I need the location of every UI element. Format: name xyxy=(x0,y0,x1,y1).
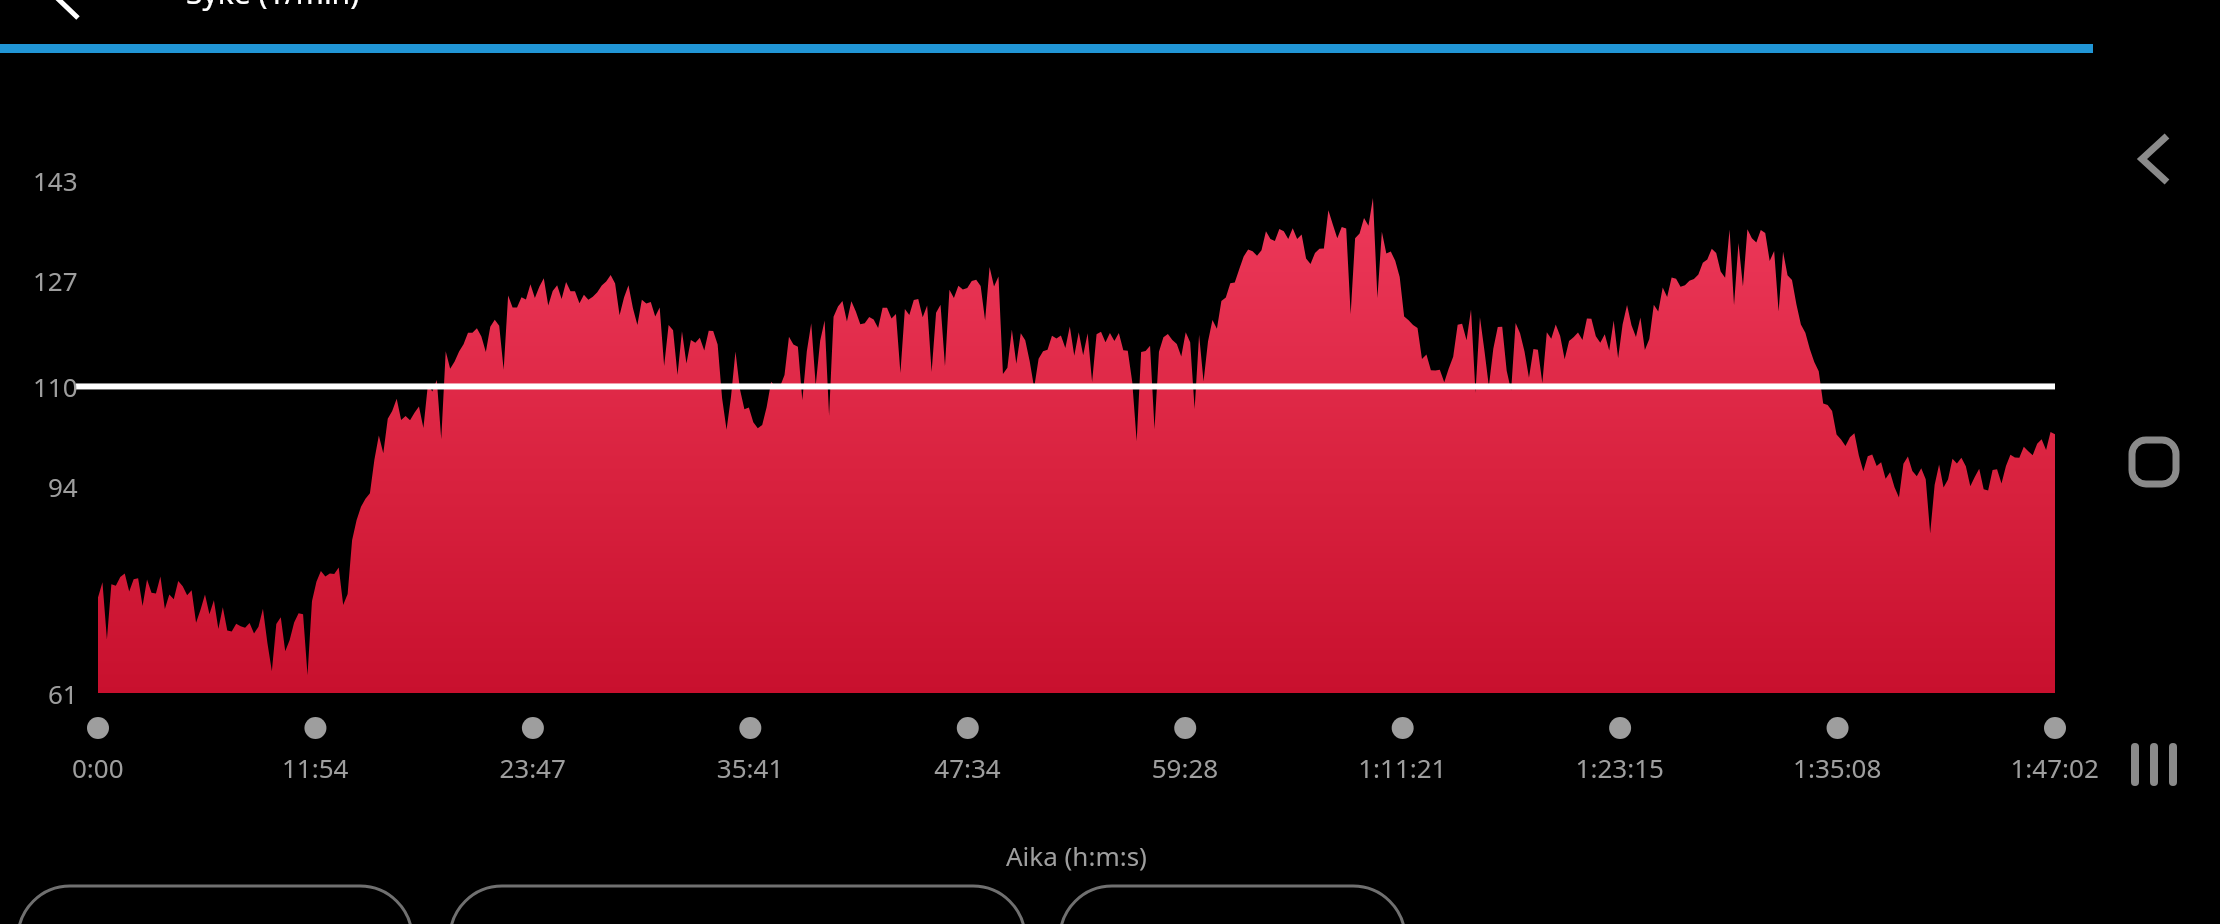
button[interactable]: Back xyxy=(8,0,72,24)
button[interactable] xyxy=(450,886,1025,924)
button[interactable]: Home xyxy=(2125,430,2185,494)
button[interactable] xyxy=(1060,886,1405,924)
button[interactable]: Back xyxy=(2125,125,2185,195)
button[interactable]: Recent apps xyxy=(2125,735,2185,795)
button[interactable] xyxy=(18,886,412,924)
